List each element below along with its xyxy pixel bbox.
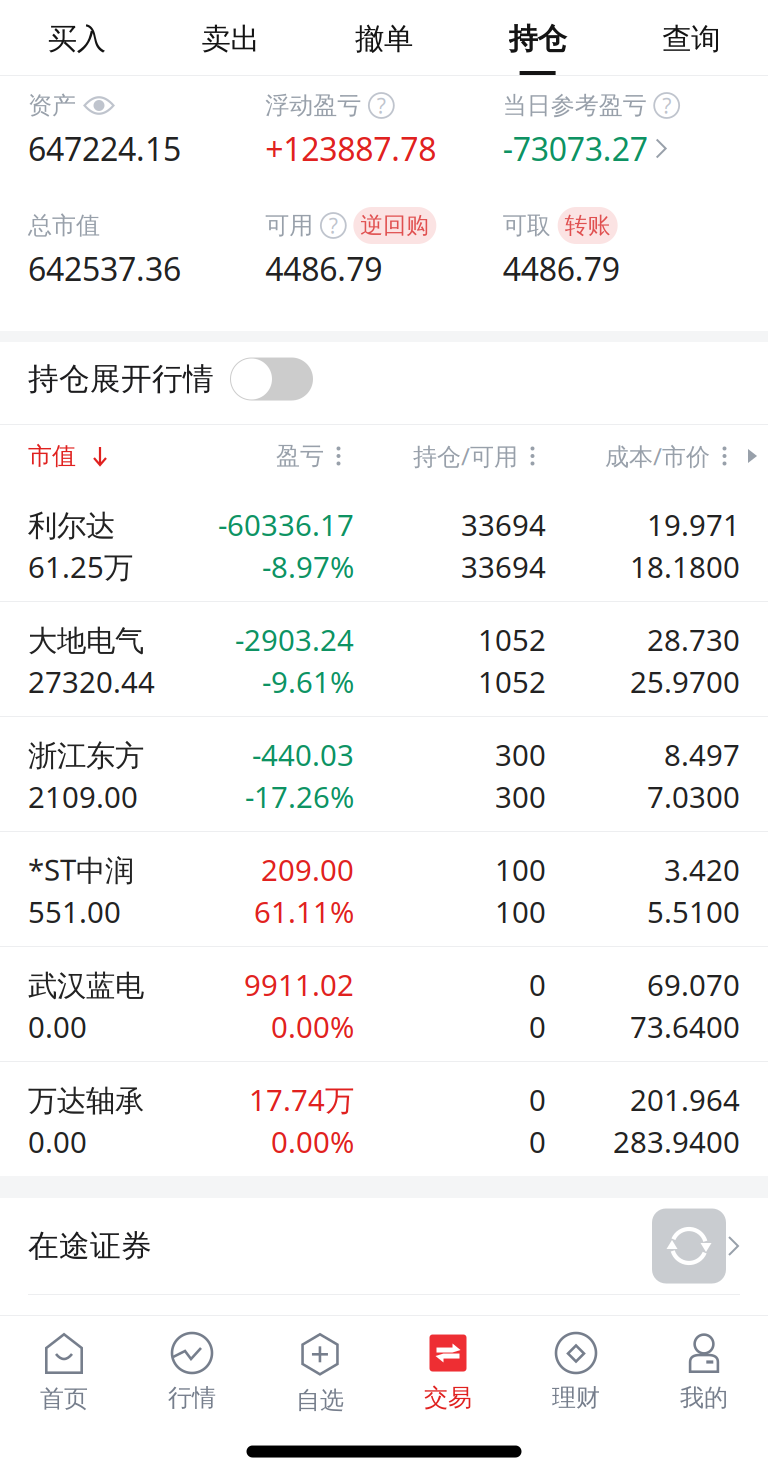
staticText: 69.070 bbox=[647, 965, 740, 1004]
staticText: ? bbox=[662, 91, 671, 120]
staticText: 市值 bbox=[28, 441, 76, 471]
staticText: 28.730 bbox=[647, 620, 740, 659]
staticText: 0.00 bbox=[28, 1122, 87, 1161]
staticText: 当日参考盈亏 bbox=[503, 91, 647, 120]
staticText: 0 bbox=[529, 965, 546, 1004]
staticText: 撤单 bbox=[355, 21, 413, 57]
staticText: 61.25万 bbox=[28, 547, 133, 586]
staticText: -440.03 bbox=[252, 735, 354, 774]
staticText: 0.00% bbox=[271, 1122, 354, 1161]
staticText: 647224.15 bbox=[28, 127, 181, 170]
button[interactable]: 查询 bbox=[614, 0, 768, 75]
staticText: 25.9700 bbox=[630, 662, 740, 701]
staticText: -2903.24 bbox=[235, 620, 354, 659]
staticText: 0 bbox=[529, 1080, 546, 1119]
staticText: 1052 bbox=[478, 662, 546, 701]
button[interactable]: 行情 bbox=[128, 1316, 256, 1424]
button[interactable]: 万达轴承 bbox=[0, 1062, 768, 1176]
staticText: 18.1800 bbox=[630, 547, 740, 586]
button[interactable]: *ST中润 bbox=[0, 832, 768, 946]
button[interactable]: 持仓 bbox=[461, 0, 614, 75]
staticText: 100 bbox=[495, 850, 546, 889]
staticText: -8.97% bbox=[262, 547, 354, 586]
staticText: 209.00 bbox=[261, 850, 354, 889]
staticText: 在途证券 bbox=[28, 1227, 152, 1265]
staticText: 4486.79 bbox=[503, 247, 620, 290]
button[interactable]: 市值 bbox=[28, 425, 198, 487]
staticText: 资产 bbox=[28, 91, 76, 120]
staticText: 33694 bbox=[461, 505, 546, 544]
staticText: ? bbox=[377, 91, 386, 120]
button[interactable]: 我的 bbox=[640, 1316, 768, 1424]
button[interactable]: 卖出 bbox=[154, 0, 307, 75]
button[interactable]: 首页 bbox=[0, 1316, 128, 1424]
staticText: 查询 bbox=[662, 21, 720, 57]
staticText: ? bbox=[329, 211, 338, 240]
button[interactable]: 持仓/可用 bbox=[341, 425, 535, 487]
staticText: 100 bbox=[495, 892, 546, 931]
staticText: 持仓展开行情 bbox=[28, 360, 214, 398]
staticText: 首页 bbox=[40, 1384, 88, 1413]
staticText: 我的 bbox=[680, 1383, 728, 1412]
staticText: 4486.79 bbox=[265, 247, 382, 290]
button[interactable]: 盈亏 bbox=[198, 425, 341, 487]
staticText: *ST中润 bbox=[28, 850, 134, 889]
staticText: 300 bbox=[495, 777, 546, 816]
staticText: 3.420 bbox=[664, 850, 740, 889]
staticText: 5.5100 bbox=[647, 892, 740, 931]
button[interactable]: 交易 bbox=[384, 1316, 512, 1424]
button[interactable]: 买入 bbox=[0, 0, 154, 75]
staticText: 卖出 bbox=[201, 21, 259, 57]
button[interactable]: 更多列 bbox=[727, 425, 759, 487]
staticText: 7.0300 bbox=[647, 777, 740, 816]
staticText: 551.00 bbox=[28, 892, 121, 931]
staticText: 交易 bbox=[424, 1383, 472, 1412]
staticText: 0 bbox=[529, 1122, 546, 1161]
staticText: +123887.78 bbox=[265, 127, 436, 170]
staticText: -73073.27 bbox=[503, 127, 648, 170]
button[interactable]: 浙江东方 bbox=[0, 717, 768, 831]
staticText: 201.964 bbox=[630, 1080, 740, 1119]
staticText: 转账 bbox=[565, 212, 611, 239]
button[interactable]: 在途证券 bbox=[0, 1198, 768, 1294]
button[interactable]: 利尔达 bbox=[0, 487, 768, 601]
staticText: 300 bbox=[495, 735, 546, 774]
staticText: 33694 bbox=[461, 547, 546, 586]
staticText: 19.971 bbox=[647, 505, 740, 544]
staticText: -60336.17 bbox=[218, 505, 354, 544]
staticText: 8.497 bbox=[664, 735, 740, 774]
staticText: 642537.36 bbox=[28, 247, 181, 290]
staticText: 逆回购 bbox=[360, 212, 429, 239]
staticText: 大地电气 bbox=[28, 623, 144, 659]
staticText: 0.00% bbox=[271, 1007, 354, 1046]
staticText: 283.9400 bbox=[613, 1122, 740, 1161]
staticText: 73.6400 bbox=[630, 1007, 740, 1046]
button[interactable]: 大地电气 bbox=[0, 602, 768, 716]
staticText: 万达轴承 bbox=[28, 1083, 144, 1119]
staticText: 成本/市价 bbox=[605, 440, 710, 472]
button[interactable]: 撤单 bbox=[307, 0, 461, 75]
button[interactable]: 持仓展开行情 bbox=[230, 357, 313, 400]
staticText: 行情 bbox=[168, 1383, 216, 1412]
button[interactable]: 自选 bbox=[256, 1316, 384, 1424]
staticText: 利尔达 bbox=[28, 508, 115, 544]
button[interactable]: 武汉蓝电 bbox=[0, 947, 768, 1061]
staticText: 浮动盈亏 bbox=[265, 91, 361, 120]
staticText: -9.61% bbox=[262, 662, 354, 701]
staticText: 0.00 bbox=[28, 1007, 87, 1046]
staticText: 总市值 bbox=[28, 211, 100, 240]
staticText: 持仓 bbox=[509, 21, 567, 57]
staticText: 可用 bbox=[265, 211, 313, 240]
staticText: 61.11% bbox=[254, 892, 354, 931]
staticText: 理财 bbox=[552, 1383, 600, 1412]
staticText: 买入 bbox=[48, 21, 106, 57]
staticText: 2109.00 bbox=[28, 777, 138, 816]
staticText: -17.26% bbox=[245, 777, 354, 816]
button[interactable]: 理财 bbox=[512, 1316, 640, 1424]
button[interactable]: 成本/市价 bbox=[535, 425, 727, 487]
staticText: 浙江东方 bbox=[28, 738, 144, 774]
staticText: 17.74万 bbox=[249, 1080, 354, 1119]
staticText: 9911.02 bbox=[244, 965, 354, 1004]
staticText: 可取 bbox=[503, 211, 551, 240]
staticText: 27320.44 bbox=[28, 662, 155, 701]
